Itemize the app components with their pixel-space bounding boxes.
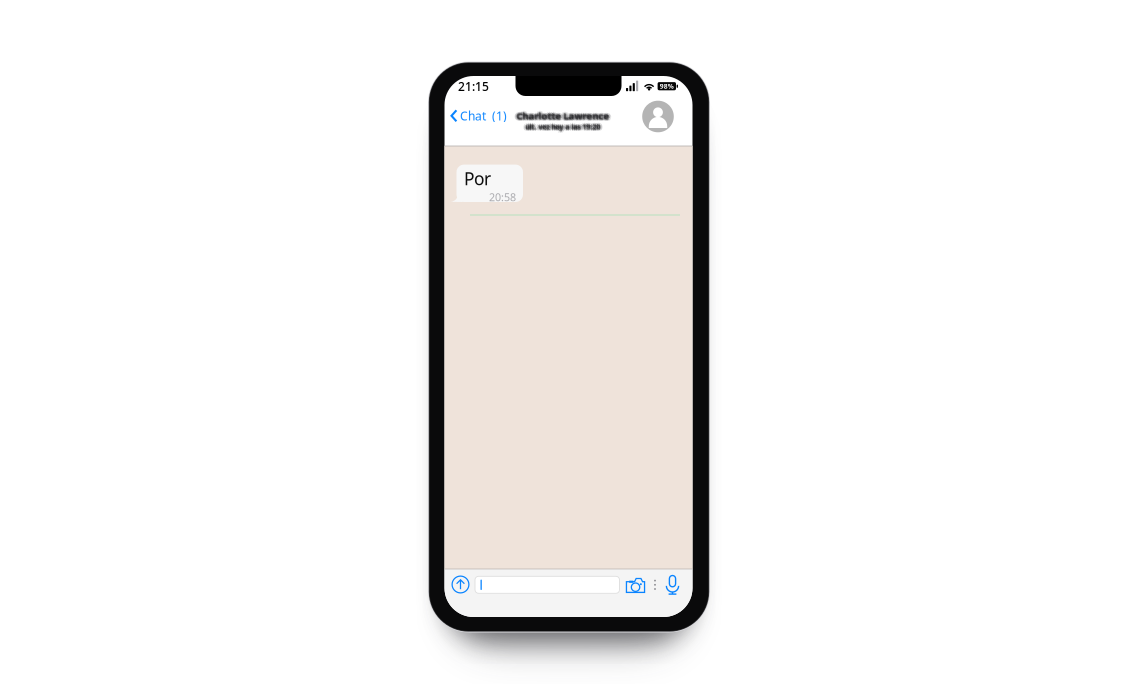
button[interactable]: More options [649, 575, 661, 594]
staticText: Charlotte Lawrence [517, 110, 610, 122]
staticText: Charlotte Lawrence [516, 109, 609, 122]
staticText: Charlotte Lawrence [516, 109, 609, 121]
staticText: últ. vez hoy a las 19:20 [526, 123, 601, 132]
staticText: últ. vez hoy a las 19:20 [524, 121, 599, 130]
staticText: últ. vez hoy a las 19:20 [525, 123, 600, 132]
staticText: últ. vez hoy a las 19:20 [524, 124, 599, 132]
staticText: 98% [660, 82, 674, 91]
staticText: Charlotte Lawrence [516, 111, 609, 124]
staticText: Charlotte Lawrence [515, 108, 608, 121]
staticText: Por [464, 167, 491, 190]
staticText: últ. vez hoy a las 19:20 [525, 122, 600, 131]
staticText: Chat (1) [460, 108, 507, 124]
staticText: Charlotte Lawrence [519, 110, 612, 122]
staticText: Charlotte Lawrence [516, 110, 609, 122]
button[interactable]: Chat (1) [445, 100, 512, 132]
staticText: Charlotte Lawrence [516, 108, 609, 120]
staticText: Charlotte Lawrence [515, 111, 608, 123]
staticText: últ. vez hoy a las 19:20 [527, 121, 602, 130]
staticText: últ. vez hoy a las 19:20 [524, 122, 599, 131]
staticText: últ. vez hoy a las 19:20 [525, 124, 600, 133]
staticText: 20:58 [489, 190, 516, 204]
staticText: últ. vez hoy a las 19:20 [526, 122, 601, 131]
staticText: Charlotte Lawrence [514, 110, 607, 122]
staticText: últ. vez hoy a las 19:20 [528, 122, 603, 131]
button[interactable]: Attach [447, 571, 474, 598]
staticText: últ. vez hoy a las 19:20 [527, 124, 602, 132]
button[interactable]: Camera [622, 573, 648, 596]
staticText: 21:15 [458, 78, 489, 94]
staticText: Charlotte Lawrence [516, 110, 609, 123]
staticText: últ. vez hoy a las 19:20 [525, 122, 600, 131]
staticText: Charlotte Lawrence [518, 108, 611, 121]
staticText: Charlotte Lawrence [518, 111, 611, 123]
button[interactable]: Contact info [639, 98, 677, 135]
staticText: Charlotte Lawrence [515, 110, 608, 122]
staticText: últ. vez hoy a las 19:20 [523, 122, 598, 131]
staticText: últ. vez hoy a las 19:20 [525, 121, 600, 130]
button[interactable]: Message [475, 576, 619, 593]
staticText: Charlotte Lawrence [517, 110, 610, 122]
staticText: últ. vez hoy a las 19:20 [525, 122, 600, 130]
button[interactable]: Record voice message [662, 571, 682, 598]
